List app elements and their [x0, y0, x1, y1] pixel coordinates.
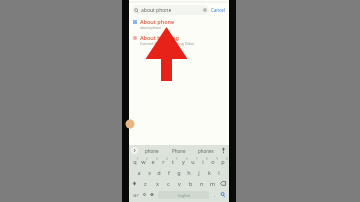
staticText: s — [148, 169, 151, 176]
staticText: 0 — [226, 157, 228, 161]
button[interactable]: k — [204, 167, 214, 178]
staticText: z — [144, 180, 147, 187]
button[interactable]: x — [151, 178, 163, 189]
button[interactable]: phone — [138, 145, 165, 156]
staticText: q — [133, 158, 137, 165]
button[interactable]: g — [174, 167, 184, 178]
button[interactable]: Change language — [148, 189, 156, 201]
button[interactable]: d — [154, 167, 164, 178]
staticText: About phone — [140, 18, 175, 25]
staticText: f — [168, 169, 170, 176]
button[interactable]: Shift — [130, 178, 139, 189]
button[interactable]: b — [185, 178, 196, 189]
staticText: a — [137, 169, 141, 176]
button[interactable]: l — [214, 167, 224, 178]
button[interactable]: z — [139, 178, 151, 189]
staticText: 6 — [186, 157, 188, 161]
button[interactable]: Backspace — [218, 178, 228, 189]
button[interactable]: about phone — [132, 5, 209, 15]
button[interactable]: t — [168, 156, 178, 167]
staticText: d — [157, 169, 161, 176]
button[interactable]: English — [158, 191, 209, 199]
staticText: w — [141, 158, 146, 165]
staticText: 5 — [176, 157, 178, 161]
staticText: j — [198, 169, 200, 176]
staticText: c — [167, 180, 170, 187]
staticText: Cancel — [211, 7, 226, 13]
button[interactable]: p — [218, 156, 228, 167]
staticText: Phone — [172, 148, 186, 154]
staticText: x — [156, 180, 159, 187]
staticText: o — [211, 158, 215, 165]
button[interactable]: Search — [218, 189, 228, 201]
staticText: 4 — [166, 157, 168, 161]
button[interactable]: v — [174, 178, 185, 189]
staticText: i — [202, 158, 204, 165]
staticText: about phone — [141, 7, 172, 14]
button[interactable]: . — [211, 189, 218, 201]
button[interactable]: More suggestions — [131, 147, 138, 154]
button[interactable]: m — [207, 178, 218, 189]
staticText: p — [221, 158, 225, 165]
button[interactable]: y — [178, 156, 188, 167]
button[interactable]: s — [144, 167, 154, 178]
staticText: k — [208, 169, 211, 176]
button[interactable]: c — [163, 178, 174, 189]
staticText: y — [182, 158, 185, 165]
button[interactable]: i — [198, 156, 208, 167]
button[interactable]: r — [158, 156, 168, 167]
button[interactable]: a — [134, 167, 144, 178]
staticText: g — [177, 169, 181, 176]
staticText: 3 — [156, 157, 158, 161]
staticText: about phone — [140, 25, 162, 30]
button[interactable]: j — [194, 167, 204, 178]
staticText: 8 — [206, 157, 208, 161]
staticText: Connect Samsung Printing Other — [140, 41, 195, 46]
button[interactable]: Phone — [165, 145, 192, 156]
staticText: r — [162, 158, 165, 165]
button[interactable]: About building — [129, 34, 229, 46]
staticText: phones — [198, 148, 214, 154]
button[interactable]: phones — [192, 145, 219, 156]
staticText: m — [210, 180, 216, 187]
staticText: n — [200, 180, 204, 187]
button[interactable]: w — [139, 156, 148, 167]
staticText: phone — [145, 148, 159, 154]
staticText: u — [191, 158, 195, 165]
staticText: t — [172, 158, 174, 165]
staticText: h — [187, 169, 191, 176]
staticText: v — [178, 180, 181, 187]
button[interactable]: Emoji — [141, 189, 148, 201]
staticText: 9 — [216, 157, 218, 161]
staticText: e — [151, 158, 155, 165]
button[interactable]: h — [184, 167, 194, 178]
button[interactable]: u — [188, 156, 198, 167]
staticText: English — [178, 193, 190, 198]
button[interactable]: n — [196, 178, 207, 189]
button[interactable]: !#? — [130, 189, 141, 201]
staticText: b — [189, 180, 193, 187]
button[interactable]: f — [164, 167, 174, 178]
button[interactable]: o — [208, 156, 218, 167]
button[interactable]: q — [130, 156, 139, 167]
button[interactable]: About phone — [129, 18, 229, 30]
button[interactable]: Cancel — [211, 7, 226, 13]
staticText: 1 — [137, 157, 139, 161]
staticText: About building — [140, 34, 179, 41]
staticText: 7 — [196, 157, 198, 161]
staticText: . — [214, 192, 216, 199]
staticText: 2 — [146, 157, 148, 161]
button[interactable]: e — [148, 156, 158, 167]
staticText: !#? — [133, 193, 139, 198]
button[interactable]: Voice input — [219, 145, 228, 156]
staticText: l — [218, 169, 220, 176]
